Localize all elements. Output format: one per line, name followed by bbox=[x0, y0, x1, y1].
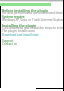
staticText: Download and install now bbox=[2, 33, 64, 37]
staticText: Installing the plugin bbox=[2, 23, 64, 28]
staticText: Windows XP, Vista or 7 with Internet Exp… bbox=[2, 18, 64, 22]
staticText: The plugin installs auto bbox=[2, 29, 64, 33]
staticText: For best performance we recommend that y… bbox=[2, 11, 64, 15]
staticText: Contact us bbox=[2, 42, 64, 46]
staticText: Support bbox=[2, 39, 64, 43]
staticText: Click download and follow the steps to i… bbox=[2, 26, 64, 30]
staticText: System require bbox=[2, 15, 64, 19]
staticText: Before installing the plugin bbox=[2, 8, 64, 13]
